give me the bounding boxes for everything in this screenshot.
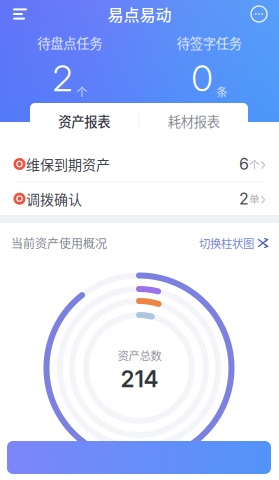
staticText: › — [260, 154, 266, 174]
staticText: 维保到期资产 — [26, 154, 110, 174]
staticText: 易点易动 — [107, 2, 171, 26]
staticText: 0 — [191, 56, 213, 100]
staticText: 当前资产使用概况 — [11, 234, 107, 252]
staticText: 个 — [76, 83, 87, 100]
button[interactable]: 维保到期资产 — [0, 147, 279, 181]
staticText: 6 — [239, 154, 249, 174]
button[interactable]: 调拨确认 — [0, 182, 279, 216]
button[interactable]: Messages — [245, 1, 273, 27]
staticText: 耗材报表 — [168, 111, 220, 131]
staticText: 待签字任务 — [177, 33, 242, 52]
staticText: 切换柱状图 — [199, 235, 254, 251]
button[interactable] — [7, 441, 271, 474]
staticText: 调拨确认 — [26, 189, 82, 209]
button[interactable]: Menu — [6, 1, 34, 27]
staticText: 条 — [216, 83, 227, 100]
button[interactable]: 资产报表 — [30, 103, 139, 139]
staticText: 2 — [52, 56, 73, 100]
staticText: 待盘点任务 — [37, 33, 102, 52]
button[interactable]: 耗材报表 — [139, 103, 248, 139]
button[interactable]: 切换柱状图 — [199, 232, 268, 254]
staticText: 2 — [239, 189, 249, 208]
staticText: 214 — [120, 365, 158, 393]
staticText: 资产总数 — [117, 347, 161, 363]
staticText: 单 — [249, 191, 260, 206]
staticText: 资产报表 — [58, 111, 110, 131]
staticText: › — [260, 189, 266, 208]
staticText: 个 — [249, 156, 260, 172]
